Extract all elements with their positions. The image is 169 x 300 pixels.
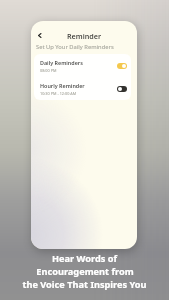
button[interactable]: Daily Reminders [34,54,131,77]
button[interactable]: Hourly Reminder [34,77,131,100]
staticText: 08:00 PM [40,68,57,73]
staticText: Hourly Reminder [40,82,85,89]
button[interactable]: Toggle Hourly Reminder [117,86,127,92]
staticText: Encouragement from [36,265,134,278]
staticText: 10:30 PM - 12:00 AM [40,91,77,96]
button[interactable]: Back [34,30,44,40]
staticText: the Voice That Inspires You [22,278,147,291]
staticText: Set Up Your Daily Reminders [36,43,114,51]
staticText: Daily Reminders [40,59,83,66]
staticText: Hear Words of [52,252,117,265]
button[interactable]: Toggle Daily Reminders [117,63,127,69]
staticText: Reminder [67,31,102,41]
